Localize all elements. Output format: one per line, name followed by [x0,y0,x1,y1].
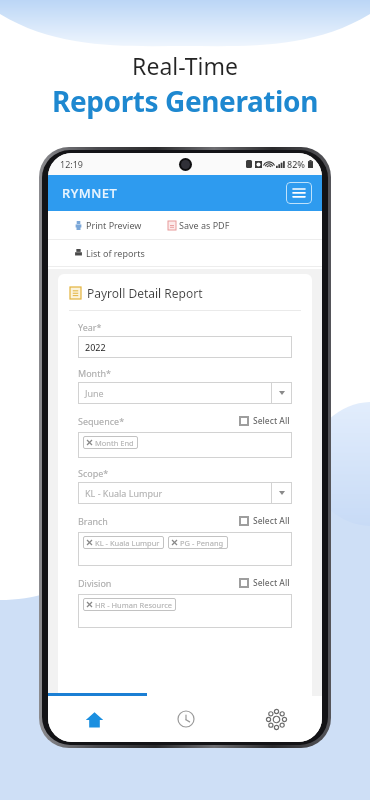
staticText: Month End [95,438,134,448]
button[interactable]: Select All [237,513,292,529]
staticText: KL - Kuala Lumpur [85,487,271,499]
button[interactable]: History [140,696,231,742]
staticText: Scope* [78,467,109,479]
staticText: Select All [253,577,290,589]
button[interactable]: KL - Kuala Lumpur [78,532,292,566]
staticText: Reports Generation [52,82,318,120]
staticText: Print Preview [86,219,142,231]
staticText: Select All [253,415,290,427]
staticText: Save as PDF [179,219,230,231]
staticText: HR - Human Resource [95,600,172,610]
button[interactable]: Select All [237,575,292,591]
staticText: List of reports [86,247,145,259]
button[interactable]: Save as PDF [166,216,232,234]
button[interactable]: KL - Kuala Lumpur [87,536,160,549]
staticText: 2022 [85,341,106,353]
button[interactable]: Menu [286,182,312,204]
button[interactable]: Home [48,696,140,742]
staticText: Year* [78,321,102,333]
staticText: KL - Kuala Lumpur [95,538,160,548]
staticText: 82% [287,158,305,170]
button[interactable]: PG - Penang [172,536,224,549]
button[interactable]: List of reports [72,244,147,262]
button[interactable]: Month End [87,436,134,449]
button[interactable]: Month End [78,432,292,458]
button[interactable]: 2022 [78,336,292,358]
button[interactable]: Print Preview [72,216,144,234]
button[interactable]: Settings [231,696,322,742]
staticText: Branch [78,515,108,527]
staticText: PG - Penang [180,538,224,548]
staticText: Real-Time [132,50,238,81]
button[interactable]: Select All [237,413,292,429]
staticText: June [85,387,271,399]
staticText: RYMNET [62,184,118,202]
staticText: Select All [253,515,290,527]
button[interactable]: HR - Human Resource [87,598,172,611]
button[interactable]: KL - Kuala Lumpur [78,482,292,504]
staticText: Division [78,577,112,589]
button[interactable]: HR - Human Resource [78,594,292,628]
staticText: Sequence* [78,415,125,427]
staticText: 12:19 [60,158,84,170]
staticText: Month* [78,367,111,379]
button[interactable]: June [78,382,292,404]
staticText: Payroll Detail Report [87,285,203,301]
